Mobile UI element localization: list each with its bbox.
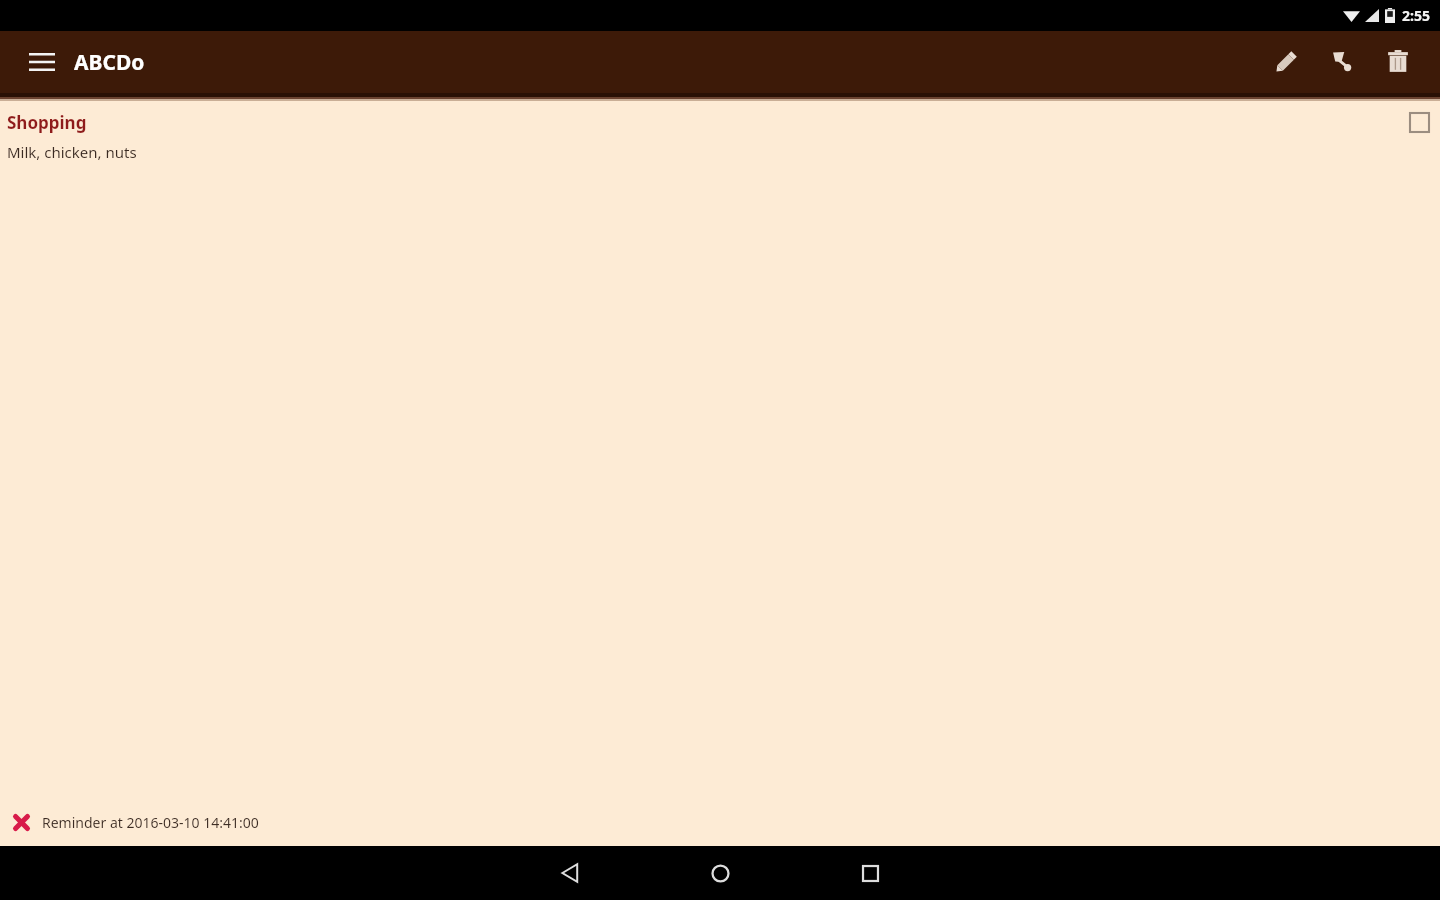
button[interactable]: Open navigation menu — [22, 42, 62, 82]
button[interactable]: Back — [495, 846, 645, 900]
button[interactable]: Mark note as done — [1404, 107, 1434, 137]
button[interactable]: Delete — [1374, 38, 1422, 86]
staticText: Shopping — [7, 111, 87, 134]
button[interactable]: Remove reminder — [0, 806, 1440, 838]
staticText: Reminder at 2016-03-10 14:41:00 — [42, 813, 259, 832]
staticText: ABCDo — [74, 48, 145, 77]
button[interactable]: Edit — [1262, 38, 1310, 86]
button[interactable]: Set reminder — [1318, 38, 1366, 86]
button[interactable]: Shopping — [0, 101, 1440, 162]
staticText: 2:55 — [1402, 6, 1430, 25]
other: Remove reminder — [9, 810, 33, 834]
button[interactable]: Recent apps — [795, 846, 945, 900]
staticText: Milk, chicken, nuts — [7, 142, 137, 162]
button[interactable]: Home — [645, 846, 795, 900]
